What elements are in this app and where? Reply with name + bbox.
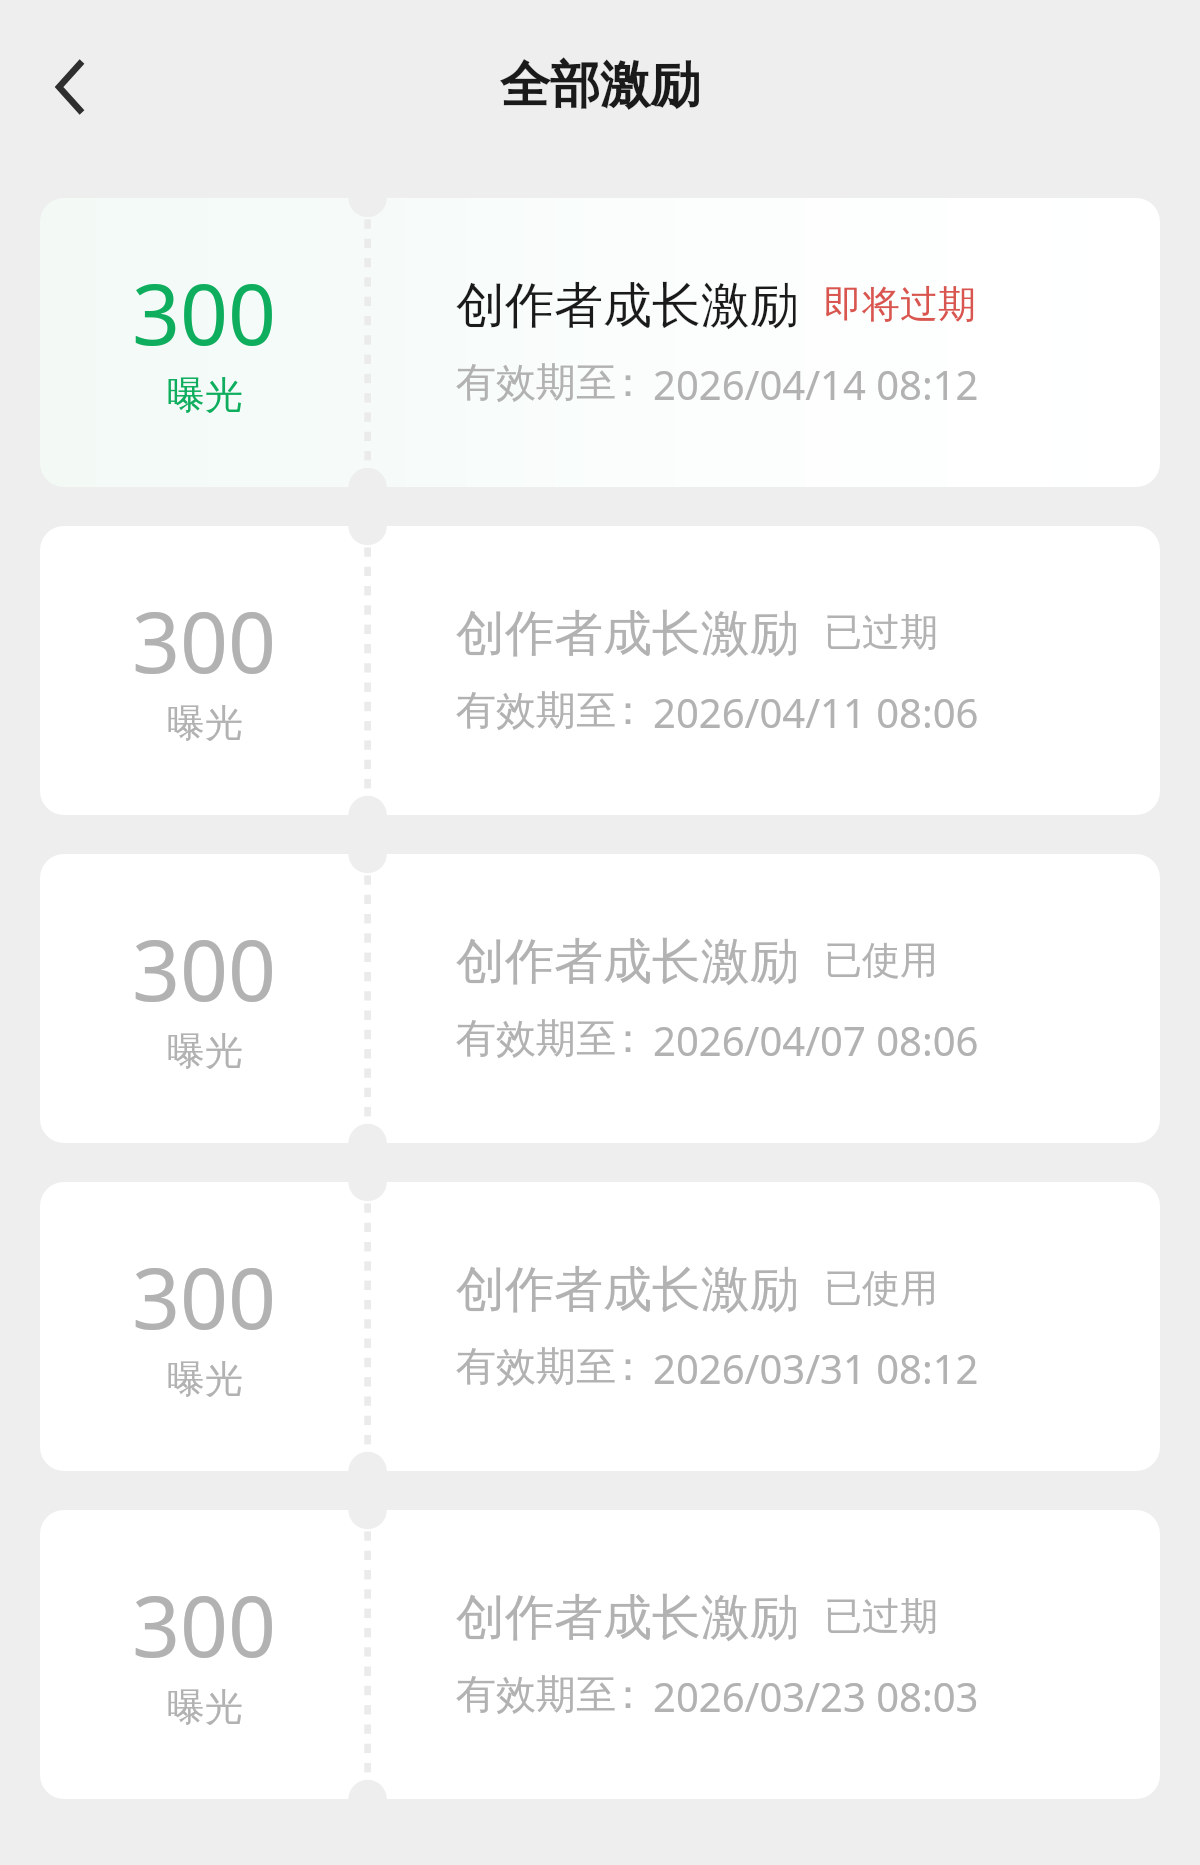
staticText: 300 [132, 255, 277, 369]
staticText: 300 [132, 1239, 277, 1353]
staticText: 有效期至 [456, 357, 616, 407]
staticText: ： [608, 1013, 648, 1063]
staticText: 创作者成长激励 [456, 603, 799, 665]
staticText: 有效期至 [456, 1341, 616, 1391]
staticText: ： [608, 1341, 648, 1391]
staticText: 300 [132, 1567, 277, 1681]
staticText: ： [608, 1669, 648, 1719]
staticText: 曝光 [167, 699, 243, 747]
staticText: 已使用 [824, 1264, 938, 1312]
button[interactable]: 300 [40, 1182, 1160, 1471]
staticText: 有效期至 [456, 1013, 616, 1063]
staticText: 曝光 [167, 1027, 243, 1075]
button[interactable]: Back [19, 43, 103, 127]
staticText: 2026/04/11 08:06 [653, 685, 979, 739]
staticText: 2026/04/07 08:06 [653, 1013, 979, 1067]
staticText: 创作者成长激励 [456, 1259, 799, 1321]
staticText: ： [608, 685, 648, 735]
button[interactable]: 300 [40, 198, 1160, 487]
button[interactable]: 300 [40, 526, 1160, 815]
staticText: 2026/04/14 08:12 [653, 357, 979, 411]
staticText: 已使用 [824, 936, 938, 984]
staticText: 创作者成长激励 [456, 931, 799, 993]
staticText: 已过期 [824, 1592, 938, 1640]
staticText: 曝光 [167, 1355, 243, 1403]
staticText: 300 [132, 911, 277, 1025]
staticText: 即将过期 [824, 280, 976, 328]
staticText: 创作者成长激励 [456, 275, 799, 337]
button[interactable]: 300 [40, 854, 1160, 1143]
staticText: 曝光 [167, 1683, 243, 1731]
staticText: 曝光 [167, 371, 243, 419]
staticText: 有效期至 [456, 685, 616, 735]
staticText: 2026/03/31 08:12 [653, 1341, 979, 1395]
staticText: 有效期至 [456, 1669, 616, 1719]
staticText: 300 [132, 583, 277, 697]
button[interactable]: 300 [40, 1510, 1160, 1799]
staticText: 创作者成长激励 [456, 1587, 799, 1649]
staticText: 已过期 [824, 608, 938, 656]
staticText: 全部激励 [500, 54, 700, 117]
staticText: 2026/03/23 08:03 [653, 1669, 979, 1723]
staticText: ： [608, 357, 648, 407]
